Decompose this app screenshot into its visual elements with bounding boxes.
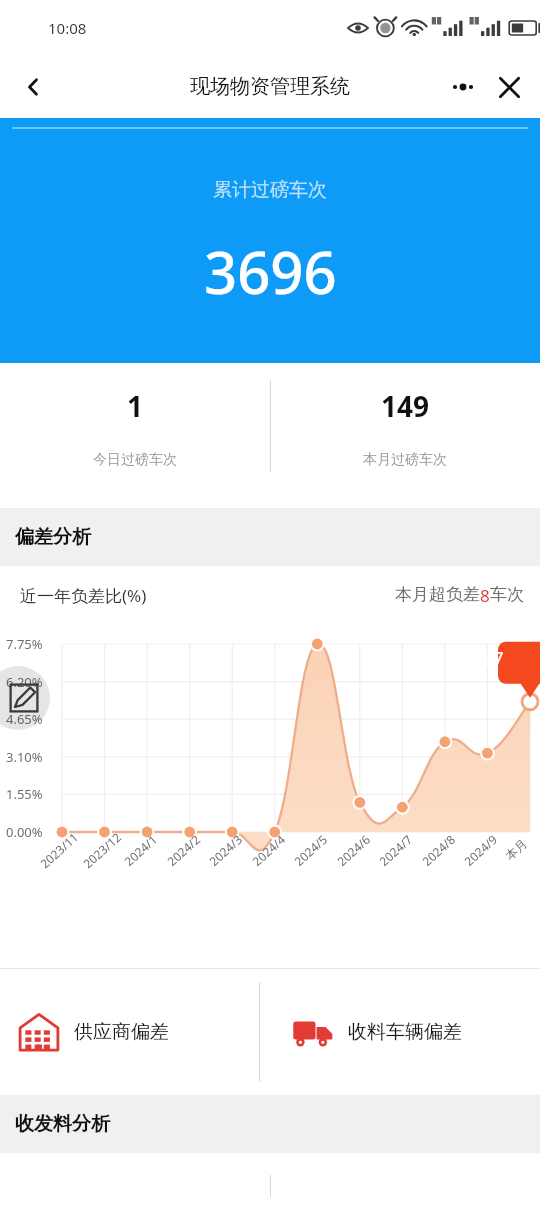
staticText: 2023/11 — [37, 829, 81, 871]
staticText: 2024/8 — [419, 831, 458, 869]
button[interactable]: 收料车辆偏差 — [270, 969, 540, 1095]
staticText: 10:08 — [48, 18, 87, 38]
button[interactable]: 供应商偏差 — [0, 969, 270, 1095]
button[interactable]: 149 — [270, 363, 540, 508]
button[interactable]: Back — [10, 64, 56, 110]
staticText: 2024/5 — [291, 831, 330, 869]
staticText: 7.75% — [6, 635, 43, 653]
staticText: 6.20% — [6, 673, 43, 691]
staticText: 收料车辆偏差 — [348, 1020, 462, 1044]
staticText: 3.10% — [6, 748, 43, 766]
button[interactable]: Edit — [0, 666, 50, 730]
staticText: 现场物资管理系统 — [190, 74, 350, 99]
staticText: 3696 — [204, 232, 337, 311]
staticText: 2024/4 — [249, 831, 288, 869]
button[interactable]: 1 — [0, 363, 270, 508]
staticText: 本月过磅车次 — [363, 451, 447, 469]
staticText: 本月 — [502, 836, 530, 863]
staticText: 2024/7 — [376, 831, 415, 869]
staticText: 车次 — [490, 584, 524, 605]
staticText: 0.00% — [6, 823, 43, 841]
staticText: 1 — [127, 387, 144, 425]
staticText: 累计过磅车次 — [213, 178, 327, 202]
staticText: 2024/3 — [206, 831, 245, 869]
staticText: 供应商偏差 — [74, 1020, 169, 1044]
staticText: 今日过磅车次 — [93, 451, 177, 469]
staticText: 2023/12 — [80, 829, 124, 871]
staticText: 2024/2 — [164, 831, 203, 869]
staticText: 近一年负差比(%) — [20, 584, 147, 607]
staticText: 149 — [381, 387, 430, 425]
staticText: 8 — [480, 584, 490, 607]
staticText: 2024/9 — [461, 831, 500, 869]
staticText: 收发料分析 — [15, 1112, 110, 1136]
button[interactable]: More options — [440, 64, 486, 110]
staticText: 本月超负差 — [395, 584, 480, 605]
button[interactable]: Close — [486, 64, 532, 110]
staticText: 1.55% — [6, 785, 43, 803]
staticText: 4.65% — [6, 710, 43, 728]
staticText: 2024/1 — [121, 831, 160, 869]
staticText: 2024/6 — [334, 831, 373, 869]
staticText: 偏差分析 — [15, 525, 91, 549]
staticText: 5.37 — [466, 646, 504, 672]
